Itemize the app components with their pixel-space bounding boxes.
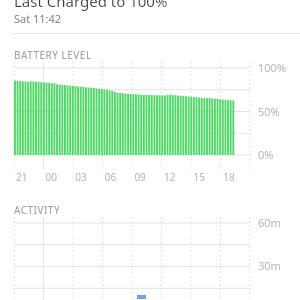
button[interactable]: [0, 0, 300, 300]
